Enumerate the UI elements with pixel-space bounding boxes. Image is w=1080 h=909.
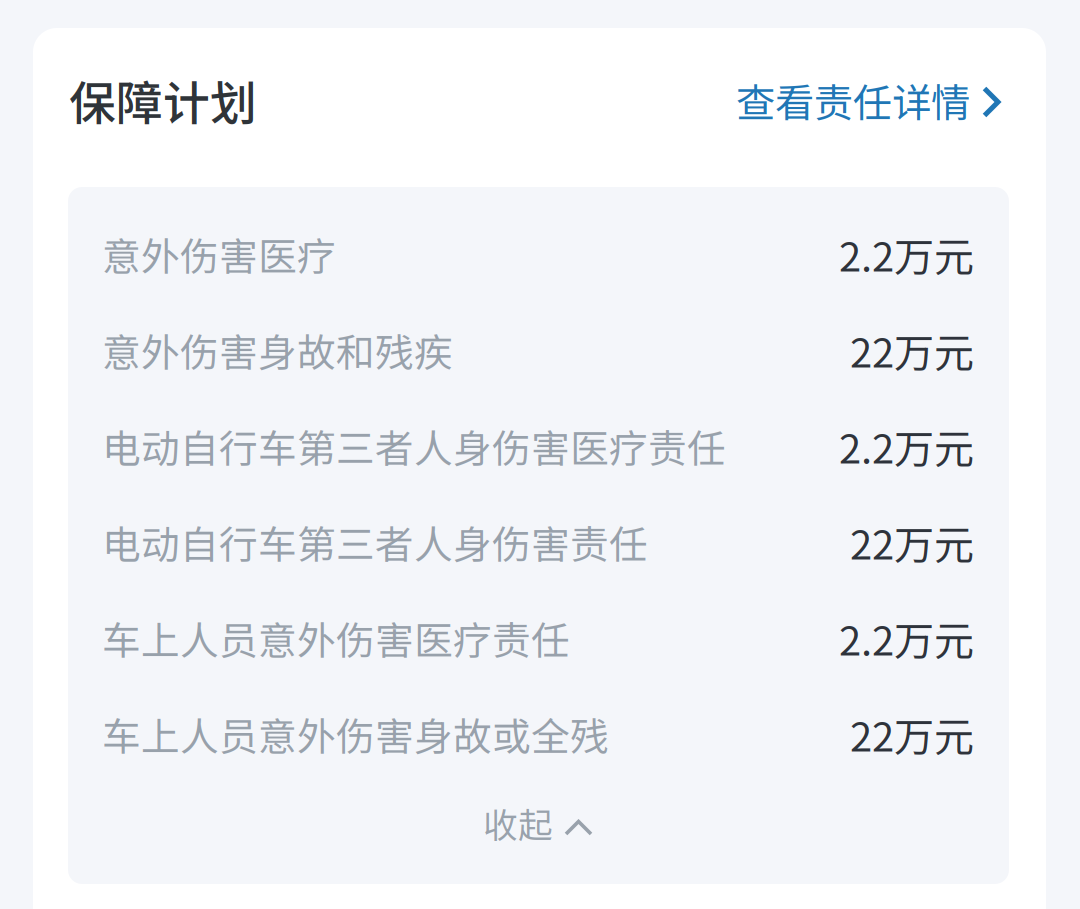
staticText: 2.2万元 xyxy=(839,609,974,667)
staticText: 22万元 xyxy=(850,513,974,571)
staticText: 收起 xyxy=(483,798,553,848)
staticText: 车上人员意外伤害医疗责任 xyxy=(102,610,570,666)
staticText: 意外伤害医疗 xyxy=(102,226,336,282)
staticText: 保障计划 xyxy=(69,66,257,134)
staticText: 意外伤害身故和残疾 xyxy=(102,322,453,378)
staticText: 查看责任详情 xyxy=(736,71,970,128)
staticText: 2.2万元 xyxy=(839,417,974,475)
staticText: 车上人员意外伤害身故或全残 xyxy=(102,706,609,762)
staticText: 22万元 xyxy=(850,321,974,379)
staticText: 电动自行车第三者人身伤害责任 xyxy=(102,514,648,570)
staticText: 2.2万元 xyxy=(839,225,974,283)
button[interactable]: 收起 xyxy=(102,782,974,864)
staticText: 电动自行车第三者人身伤害医疗责任 xyxy=(102,418,726,474)
staticText: 22万元 xyxy=(850,705,974,763)
button[interactable]: 查看责任详情 xyxy=(736,71,1001,128)
